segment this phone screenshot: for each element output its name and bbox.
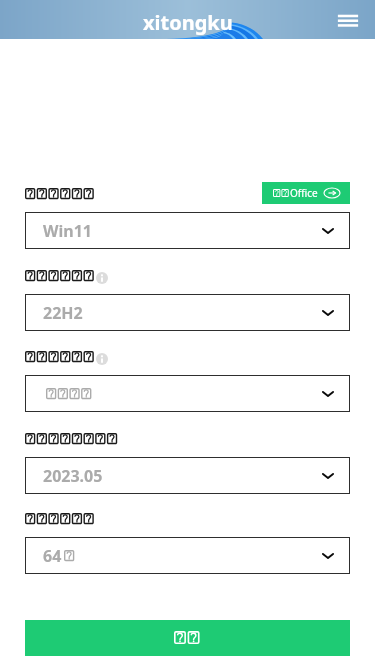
- staticText: 2023.05: [43, 465, 103, 487]
- button[interactable]: Win11: [25, 212, 350, 249]
- button[interactable]: [25, 620, 350, 656]
- button[interactable]: [25, 375, 350, 412]
- button[interactable]: Office: [262, 182, 350, 204]
- button[interactable]: 64: [25, 537, 350, 574]
- button[interactable]: 2023.05: [25, 457, 350, 494]
- staticText: xitongku: [143, 9, 233, 36]
- staticText: Win11: [43, 220, 92, 242]
- staticText: Office: [290, 186, 318, 200]
- button[interactable]: 22H2: [25, 294, 350, 331]
- staticText: 22H2: [43, 302, 83, 324]
- staticText: 64: [43, 545, 62, 567]
- button[interactable]: Menu: [337, 9, 359, 31]
